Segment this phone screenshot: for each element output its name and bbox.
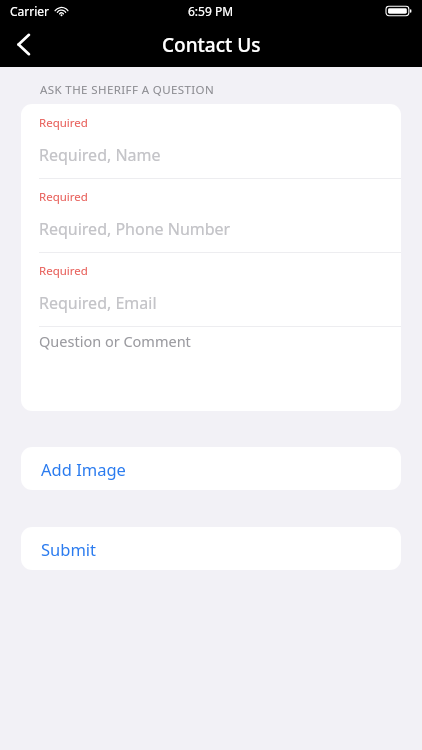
button[interactable]: Question or Comment (21, 327, 401, 411)
staticText: Required (39, 189, 88, 205)
staticText: Add Image (41, 458, 126, 480)
button[interactable]: Required (21, 104, 401, 178)
staticText: ASK THE SHERIFF A QUESTION (40, 82, 215, 98)
staticText: Required, Phone Number (39, 218, 231, 240)
staticText: Carrier (10, 3, 50, 19)
staticText: Contact Us (162, 32, 261, 58)
staticText: Required (39, 115, 88, 131)
staticText: Submit (41, 538, 97, 560)
button[interactable]: Add Image (21, 447, 401, 490)
button[interactable]: Required (21, 179, 401, 252)
staticText: Required, Email (39, 292, 157, 314)
staticText: Required, Name (39, 144, 161, 166)
staticText: 6:59 PM (188, 3, 234, 19)
staticText: Question or Comment (39, 331, 191, 351)
staticText: Required (39, 263, 88, 279)
button[interactable]: Required (21, 253, 401, 326)
button[interactable]: Back (0, 22, 46, 67)
button[interactable]: Submit (21, 527, 401, 570)
